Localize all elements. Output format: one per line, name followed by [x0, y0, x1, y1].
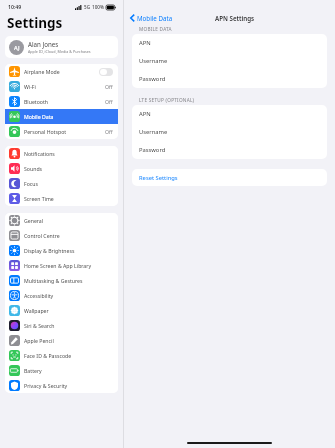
- staticText: AJ: [14, 44, 20, 51]
- staticText: Focus: [24, 180, 113, 187]
- staticText: Battery: [24, 367, 113, 374]
- button[interactable]: Siri & Search: [5, 318, 118, 333]
- staticText: Personal Hotspot: [24, 128, 105, 135]
- staticText: Alan Jones: [28, 40, 59, 48]
- staticText: Apple Pencil: [24, 337, 113, 344]
- staticText: 10:49: [8, 3, 22, 10]
- staticText: Multitasking & Gestures: [24, 277, 113, 284]
- staticText: Mobile Data: [24, 113, 113, 120]
- button[interactable]: Multitasking & Gestures: [5, 273, 118, 288]
- staticText: Wi-Fi: [24, 83, 105, 90]
- button[interactable]: Password: [132, 70, 327, 88]
- staticText: Airplane Mode: [24, 68, 99, 75]
- button[interactable]: AJ: [5, 36, 118, 58]
- staticText: Screen Time: [24, 195, 113, 202]
- staticText: Siri & Search: [24, 322, 113, 329]
- button[interactable]: Bluetooth: [5, 94, 118, 109]
- button[interactable]: Privacy & Security: [5, 378, 118, 393]
- staticText: Password: [139, 146, 166, 154]
- button[interactable]: Apple Pencil: [5, 333, 118, 348]
- button[interactable]: APN: [132, 105, 327, 123]
- button[interactable]: Focus: [5, 176, 118, 191]
- button[interactable]: Reset Settings: [132, 169, 327, 186]
- button[interactable]: Wallpaper: [5, 303, 118, 318]
- staticText: LTE SETUP (OPTIONAL): [139, 97, 195, 103]
- button[interactable]: Personal Hotspot: [5, 124, 118, 139]
- button[interactable]: Username: [132, 123, 327, 141]
- staticText: General: [24, 217, 113, 224]
- staticText: Off: [105, 128, 113, 135]
- staticText: 5G: [84, 4, 90, 10]
- button[interactable]: Mobile Data: [130, 14, 173, 22]
- staticText: Privacy & Security: [24, 382, 113, 389]
- staticText: Home Screen & App Library: [24, 262, 113, 269]
- button[interactable]: APN: [132, 34, 327, 52]
- staticText: Wallpaper: [24, 307, 113, 314]
- button[interactable]: Wi-Fi: [5, 79, 118, 94]
- button[interactable]: Mobile Data: [5, 109, 118, 124]
- staticText: Display & Brightness: [24, 247, 113, 254]
- button[interactable]: Sounds: [5, 161, 118, 176]
- button[interactable]: Battery: [5, 363, 118, 378]
- button[interactable]: General: [5, 213, 118, 228]
- staticText: 100%: [92, 4, 104, 10]
- button[interactable]: Airplane Mode: [5, 64, 118, 79]
- staticText: MOBILE DATA: [139, 26, 172, 32]
- staticText: Sounds: [24, 165, 113, 172]
- staticText: Settings: [7, 14, 63, 32]
- staticText: Face ID & Passcode: [24, 352, 113, 359]
- button[interactable]: Home Screen & App Library: [5, 258, 118, 273]
- button[interactable]: Password: [132, 141, 327, 159]
- staticText: Control Centre: [24, 232, 113, 239]
- button[interactable]: Notifications: [5, 146, 118, 161]
- staticText: Password: [139, 75, 166, 83]
- staticText: Accessibility: [24, 292, 113, 299]
- staticText: APN Settings: [215, 14, 255, 22]
- staticText: Username: [139, 128, 168, 136]
- staticText: APN: [139, 110, 151, 118]
- staticText: APN: [139, 39, 151, 47]
- staticText: Reset Settings: [139, 174, 178, 182]
- staticText: Apple ID, iCloud, Media & Purchases: [28, 49, 91, 54]
- staticText: Notifications: [24, 150, 113, 157]
- button[interactable]: Face ID & Passcode: [5, 348, 118, 363]
- button[interactable]: Username: [132, 52, 327, 70]
- staticText: Bluetooth: [24, 98, 105, 105]
- staticText: Off: [105, 83, 113, 90]
- button[interactable]: Screen Time: [5, 191, 118, 206]
- button[interactable]: Accessibility: [5, 288, 118, 303]
- staticText: Username: [139, 57, 168, 65]
- button[interactable]: Display & Brightness: [5, 243, 118, 258]
- staticText: Off: [105, 98, 113, 105]
- staticText: Mobile Data: [137, 14, 173, 22]
- button[interactable]: Control Centre: [5, 228, 118, 243]
